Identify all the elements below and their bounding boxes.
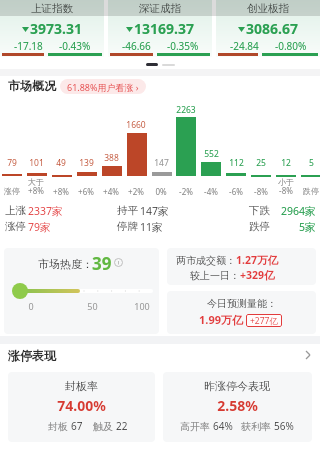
staticText: 封板率: [65, 379, 98, 393]
staticText: 22: [116, 419, 128, 433]
staticText: 74.00%: [57, 396, 106, 415]
staticText: 13169.37: [134, 19, 194, 38]
staticText: 100: [134, 300, 150, 312]
staticText: 2263: [176, 104, 196, 116]
staticText: 市场热度：: [38, 257, 93, 271]
button[interactable]: [167, 248, 316, 285]
staticText: 两市成交额：: [176, 254, 236, 267]
staticText: 61.88%用户看涨 ›: [67, 81, 139, 93]
staticText: 市场概况: [8, 78, 56, 93]
staticText: 深证成指: [139, 2, 181, 15]
staticText: 1.99万亿: [199, 312, 243, 327]
staticText: 147: [154, 157, 169, 169]
staticText: 49: [56, 157, 66, 169]
staticText: -4%: [204, 186, 218, 197]
staticText: 0%: [155, 186, 167, 197]
staticText: 上涨: [5, 204, 26, 217]
staticText: 5: [309, 157, 314, 169]
staticText: 3086.67: [246, 19, 298, 38]
staticText: 停牌: [117, 220, 138, 233]
staticText: 获利率: [241, 419, 274, 433]
staticText: 涨停: [5, 220, 26, 233]
staticText: 3973.31: [30, 19, 82, 38]
staticText: 小于 -8%: [278, 177, 294, 197]
staticText: 2.58%: [217, 396, 258, 415]
staticText: -2%: [179, 186, 193, 197]
staticText: 下跌: [249, 204, 270, 217]
staticText: 12: [281, 157, 291, 169]
staticText: -0.35%: [167, 39, 199, 53]
staticText: 11家: [140, 220, 163, 234]
staticText: 56%: [274, 419, 294, 433]
staticText: 上证指数: [31, 2, 73, 15]
staticText: 39: [92, 252, 112, 275]
button[interactable]: 上证指数: [0, 0, 104, 57]
button[interactable]: 61.88%用户看涨 ›: [67, 79, 139, 94]
staticText: 持平: [117, 204, 138, 217]
button[interactable]: 创业板指: [216, 0, 320, 57]
staticText: 1660: [126, 119, 146, 131]
staticText: 0: [28, 300, 34, 312]
staticText: 79: [7, 157, 17, 169]
staticText: 触及: [93, 419, 116, 433]
button[interactable]: [8, 372, 155, 442]
button[interactable]: [163, 372, 312, 442]
staticText: +4%: [103, 186, 119, 197]
button[interactable]: 深证成指: [108, 0, 212, 57]
staticText: -8%: [254, 186, 268, 197]
staticText: 147家: [140, 204, 169, 218]
staticText: -24.84: [230, 39, 259, 53]
staticText: 79家: [28, 220, 51, 234]
staticText: 552: [204, 148, 219, 160]
staticText: 64%: [213, 419, 233, 433]
staticText: 大于 +8%: [28, 177, 44, 197]
staticText: 2337家: [28, 204, 63, 218]
staticText: 封板: [48, 419, 71, 433]
staticText: 较上一日：: [190, 269, 240, 282]
staticText: 跌停: [249, 220, 270, 233]
staticText: 5家: [299, 220, 316, 234]
staticText: +6%: [78, 186, 94, 197]
staticText: -17.18: [14, 39, 43, 53]
staticText: 50: [87, 300, 98, 312]
staticText: 101: [29, 157, 44, 169]
staticText: 388: [104, 152, 119, 164]
staticText: 139: [79, 157, 94, 169]
staticText: -6%: [229, 186, 243, 197]
staticText: 高开率: [180, 419, 213, 433]
staticText: 涨停表现: [8, 348, 56, 363]
staticText: 112: [229, 157, 244, 169]
staticText: 昨涨停今表现: [204, 379, 270, 393]
staticText: 涨停: [4, 186, 20, 196]
staticText: +2%: [128, 186, 144, 197]
staticText: 跌停: [303, 186, 319, 196]
staticText: 创业板指: [247, 2, 289, 15]
staticText: 2964家: [281, 204, 316, 218]
staticText: -46.66: [122, 39, 151, 53]
staticText: +329亿: [240, 268, 275, 282]
staticText: +8%: [53, 186, 69, 197]
staticText: +277亿: [250, 315, 278, 327]
staticText: -0.43%: [59, 39, 91, 53]
staticText: -0.80%: [275, 39, 307, 53]
staticText: 67: [71, 419, 83, 433]
button[interactable]: [167, 291, 316, 334]
button[interactable]: [4, 248, 159, 334]
staticText: 今日预测量能：: [207, 297, 277, 310]
staticText: 25: [256, 157, 266, 169]
staticText: 1.27万亿: [236, 253, 278, 267]
